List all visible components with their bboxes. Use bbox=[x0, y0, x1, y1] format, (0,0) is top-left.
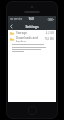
staticText: no service bbox=[10, 17, 24, 21]
staticText: Settings bbox=[8, 24, 56, 29]
button[interactable]: Back bbox=[8, 22, 15, 30]
button[interactable]: Home bbox=[28, 106, 37, 115]
staticText: Downloads and backup bbox=[16, 36, 44, 42]
staticText: 763 MB bbox=[44, 37, 54, 41]
staticText: 4.2 GB bbox=[45, 31, 54, 35]
staticText: 9:41 bbox=[24, 17, 39, 21]
staticText: Storage bbox=[16, 31, 45, 35]
button[interactable]: Downloads and backup bbox=[8, 36, 56, 42]
button[interactable]: Storage bbox=[8, 30, 56, 36]
